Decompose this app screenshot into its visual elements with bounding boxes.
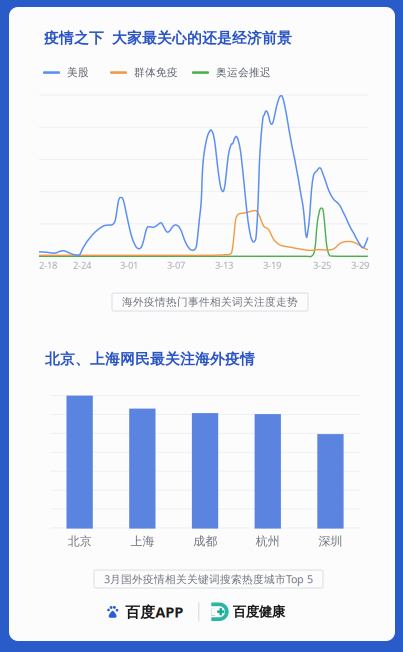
staticText: 疫情之下 大家最关心的还是经济前景 (44, 29, 292, 47)
staticText: 3-01 (120, 259, 138, 271)
staticText: 3月国外疫情相关关键词搜索热度城市Top 5 (104, 572, 313, 586)
staticText: 百度APP (125, 602, 183, 621)
staticText: 3-25 (313, 259, 331, 271)
staticText: 北京 (68, 534, 92, 549)
staticText: 3-29 (351, 259, 369, 271)
staticText: 3-19 (263, 259, 281, 271)
staticText: 3-13 (215, 259, 233, 271)
staticText: 上海 (130, 534, 154, 549)
staticText: 深圳 (319, 534, 343, 549)
staticText: 奥运会推迟 (216, 66, 271, 79)
staticText: 3-07 (167, 259, 185, 271)
staticText: 美股 (67, 66, 89, 79)
staticText: 北京、上海网民最关注海外疫情 (45, 350, 255, 368)
staticText: 群体免疫 (134, 66, 178, 79)
staticText: 杭州 (256, 534, 280, 549)
staticText: 成都 (193, 534, 217, 549)
staticText: 百度健康 (233, 604, 285, 620)
staticText: 2-24 (73, 259, 91, 271)
staticText: 2-18 (39, 259, 57, 271)
staticText: 海外疫情热门事件相关词关注度走势 (122, 295, 298, 308)
